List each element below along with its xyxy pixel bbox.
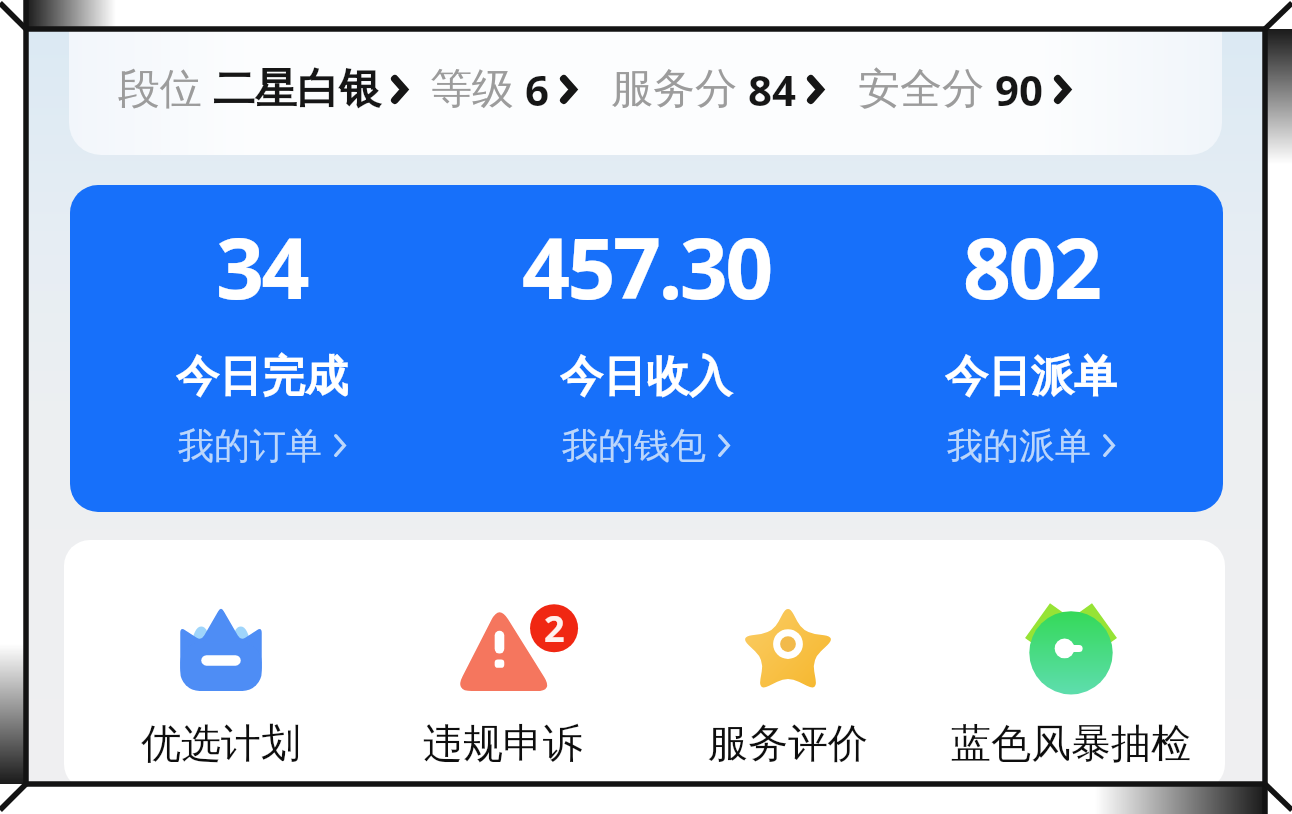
staticText: 34 <box>216 209 308 323</box>
other: 蓝色风暴抽检 <box>1028 604 1114 692</box>
staticText: 90 <box>995 61 1044 118</box>
staticText: 今日派单 <box>945 350 1117 404</box>
button[interactable] <box>69 29 1222 155</box>
other: 优选计划 <box>179 605 263 691</box>
staticText: 二星白银 <box>213 63 381 116</box>
staticText: 今日完成 <box>176 350 348 404</box>
staticText: 我的订单 <box>178 423 322 468</box>
other: 违规申诉 <box>455 605 577 691</box>
other: 服务评价 <box>740 604 836 692</box>
staticText: 我的钱包 <box>562 423 706 468</box>
staticText: 84 <box>748 61 797 118</box>
button[interactable]: 34 <box>70 185 454 512</box>
button[interactable]: 服务分 <box>611 61 824 118</box>
staticText: 等级 <box>430 63 514 116</box>
staticText: 2 <box>544 604 565 653</box>
staticText: 457.30 <box>522 209 771 323</box>
staticText: 服务分 <box>611 63 737 116</box>
button[interactable]: 等级 <box>430 61 577 118</box>
staticText: 蓝色风暴抽检 <box>951 718 1191 768</box>
staticText: 段位 <box>118 63 202 116</box>
button[interactable]: 段位 <box>118 63 408 116</box>
staticText: 802 <box>963 209 1100 323</box>
staticText: 6 <box>525 61 550 118</box>
staticText: 服务评价 <box>708 718 868 768</box>
staticText: 优选计划 <box>141 718 301 768</box>
staticText: 今日收入 <box>560 350 732 404</box>
button[interactable]: 安全分 <box>858 61 1071 118</box>
staticText: 安全分 <box>858 63 984 116</box>
button[interactable]: 优选计划 <box>79 540 362 784</box>
staticText: 我的派单 <box>947 423 1091 468</box>
button[interactable]: 服务评价 <box>646 540 929 784</box>
button[interactable]: 蓝色风暴抽检 <box>929 540 1212 784</box>
staticText: 违规申诉 <box>423 718 583 768</box>
button[interactable]: 802 <box>839 185 1223 512</box>
button[interactable]: 违规申诉 <box>361 540 644 784</box>
button[interactable]: 457.30 <box>454 185 838 512</box>
